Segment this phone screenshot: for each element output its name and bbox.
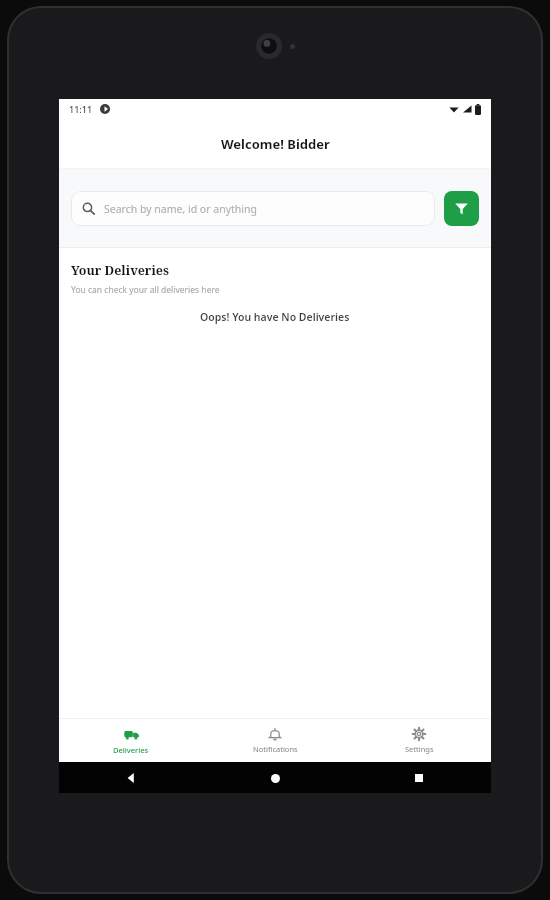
staticText: Oops! You have No Deliveries (200, 310, 350, 324)
staticText: 11:11 (69, 103, 93, 115)
staticText: Notifications (253, 744, 298, 754)
staticText: Settings (405, 744, 434, 754)
staticText: Deliveries (113, 745, 149, 755)
button[interactable]: Notifications (203, 719, 347, 762)
button[interactable]: Search by name, id or anything (71, 191, 435, 226)
button[interactable]: Settings (347, 719, 491, 762)
staticText: Welcome! Bidder (221, 135, 330, 153)
button[interactable]: Home (263, 766, 287, 790)
staticText: You can check your all deliveries here (71, 284, 220, 296)
staticText: Your Deliveries (71, 262, 169, 279)
button[interactable]: Deliveries (59, 719, 203, 762)
button[interactable]: Back (119, 766, 143, 790)
button[interactable]: Filter (444, 191, 479, 226)
staticText: Search by name, id or anything (104, 202, 257, 216)
button[interactable]: Recent apps (407, 766, 431, 790)
